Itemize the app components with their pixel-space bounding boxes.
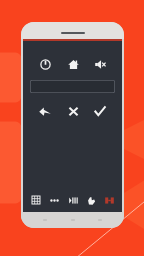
- button[interactable]: Text input: [30, 80, 115, 93]
- button[interactable]: Recents: [97, 217, 103, 223]
- button[interactable]: Mute: [90, 54, 110, 74]
- button[interactable]: Media controls: [65, 192, 81, 208]
- button[interactable]: Home: [70, 217, 76, 223]
- button[interactable]: Keypad: [28, 192, 44, 208]
- button[interactable]: More options: [46, 192, 62, 208]
- button[interactable]: Back: [42, 217, 48, 223]
- button[interactable]: Back: [35, 101, 55, 121]
- button[interactable]: Cancel: [63, 101, 83, 121]
- button[interactable]: Power: [35, 54, 55, 74]
- button[interactable]: Touchpad: [83, 192, 99, 208]
- button[interactable]: Devices: [101, 192, 117, 208]
- button[interactable]: Confirm: [90, 101, 110, 121]
- button[interactable]: Home: [63, 54, 83, 74]
